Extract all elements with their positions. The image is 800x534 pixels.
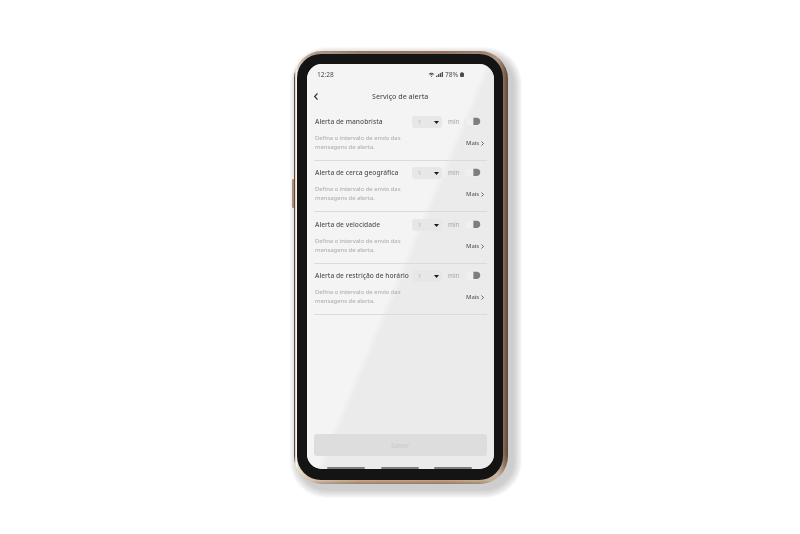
staticText: Defina o intervalo de envio das [315, 185, 401, 193]
staticText: Mais [466, 293, 480, 301]
button[interactable]: 1 [412, 270, 442, 282]
button[interactable]: Alternar alerta [464, 168, 481, 178]
staticText: 1 [418, 169, 422, 177]
button[interactable]: 1 [412, 167, 442, 179]
button[interactable]: Mais [466, 242, 484, 250]
staticText: min [448, 168, 460, 177]
staticText: Alerta de manobrista [315, 117, 383, 126]
staticText: Defina o intervalo de envio das [315, 237, 401, 245]
staticText: mensagens de alerta. [315, 246, 375, 254]
button[interactable]: Navegação [381, 467, 419, 469]
staticText: mensagens de alerta. [315, 297, 375, 305]
staticText: Mais [466, 242, 480, 250]
button[interactable]: 1 [412, 116, 442, 128]
staticText: Serviço de alerta [372, 91, 429, 101]
staticText: Mais [466, 139, 480, 147]
staticText: Mais [466, 190, 480, 198]
button[interactable]: Mais [466, 293, 484, 301]
button[interactable]: Mais [466, 139, 484, 147]
staticText: min [448, 117, 460, 126]
button[interactable]: Alternar alerta [464, 271, 481, 281]
staticText: 1 [418, 272, 422, 280]
button[interactable]: Alternar alerta [464, 117, 481, 127]
staticText: Alerta de velocidade [315, 220, 381, 229]
button[interactable]: 1 [412, 219, 442, 231]
staticText: Alerta de cerca geográfica [315, 168, 399, 177]
staticText: 1 [418, 118, 422, 126]
button[interactable]: Navegação [327, 467, 365, 469]
button[interactable]: Navegação [434, 467, 472, 469]
staticText: 1 [418, 221, 422, 229]
staticText: min [448, 220, 460, 229]
staticText: Alerta de restrição de horário [315, 271, 409, 280]
staticText: min [448, 271, 460, 280]
button[interactable]: Mais [466, 190, 484, 198]
staticText: mensagens de alerta. [315, 194, 375, 202]
staticText: mensagens de alerta. [315, 143, 375, 151]
staticText: Defina o intervalo de envio das [315, 288, 401, 296]
staticText: Salvar [391, 441, 410, 450]
button[interactable]: Voltar [308, 88, 324, 104]
button[interactable]: Alternar alerta [464, 220, 481, 230]
staticText: 12:28 [317, 70, 334, 79]
staticText: 78% [445, 70, 459, 79]
staticText: Defina o intervalo de envio das [315, 134, 401, 142]
